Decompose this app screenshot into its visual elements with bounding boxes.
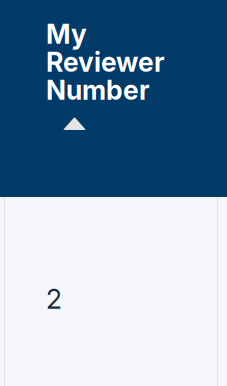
button[interactable]: Collapse My Reviewer Number <box>46 102 102 142</box>
staticText: My <box>46 18 87 50</box>
staticText: Number <box>46 74 150 106</box>
staticText: Reviewer <box>46 46 165 78</box>
staticText: 2 <box>46 283 62 315</box>
